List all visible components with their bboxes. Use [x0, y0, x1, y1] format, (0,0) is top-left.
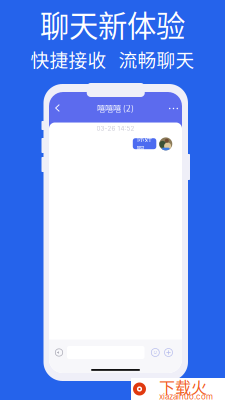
button[interactable]: Emoji [149, 346, 161, 358]
button[interactable]: Back [50, 101, 64, 115]
staticText: 嘻嘻嘻 (2) [97, 102, 134, 114]
staticText: 03-26 14:52 [96, 125, 134, 132]
staticText: 下载火 [159, 375, 207, 398]
button[interactable]: More options [162, 346, 174, 358]
button[interactable]: Voice message [53, 346, 65, 358]
staticText: xiazaihuo.com [159, 392, 213, 400]
staticText: 聊天新体验 [40, 3, 185, 45]
staticText: 你好啊 [137, 132, 153, 155]
button[interactable]: More [165, 102, 181, 114]
staticText: 快捷接收 流畅聊天 [30, 45, 194, 72]
